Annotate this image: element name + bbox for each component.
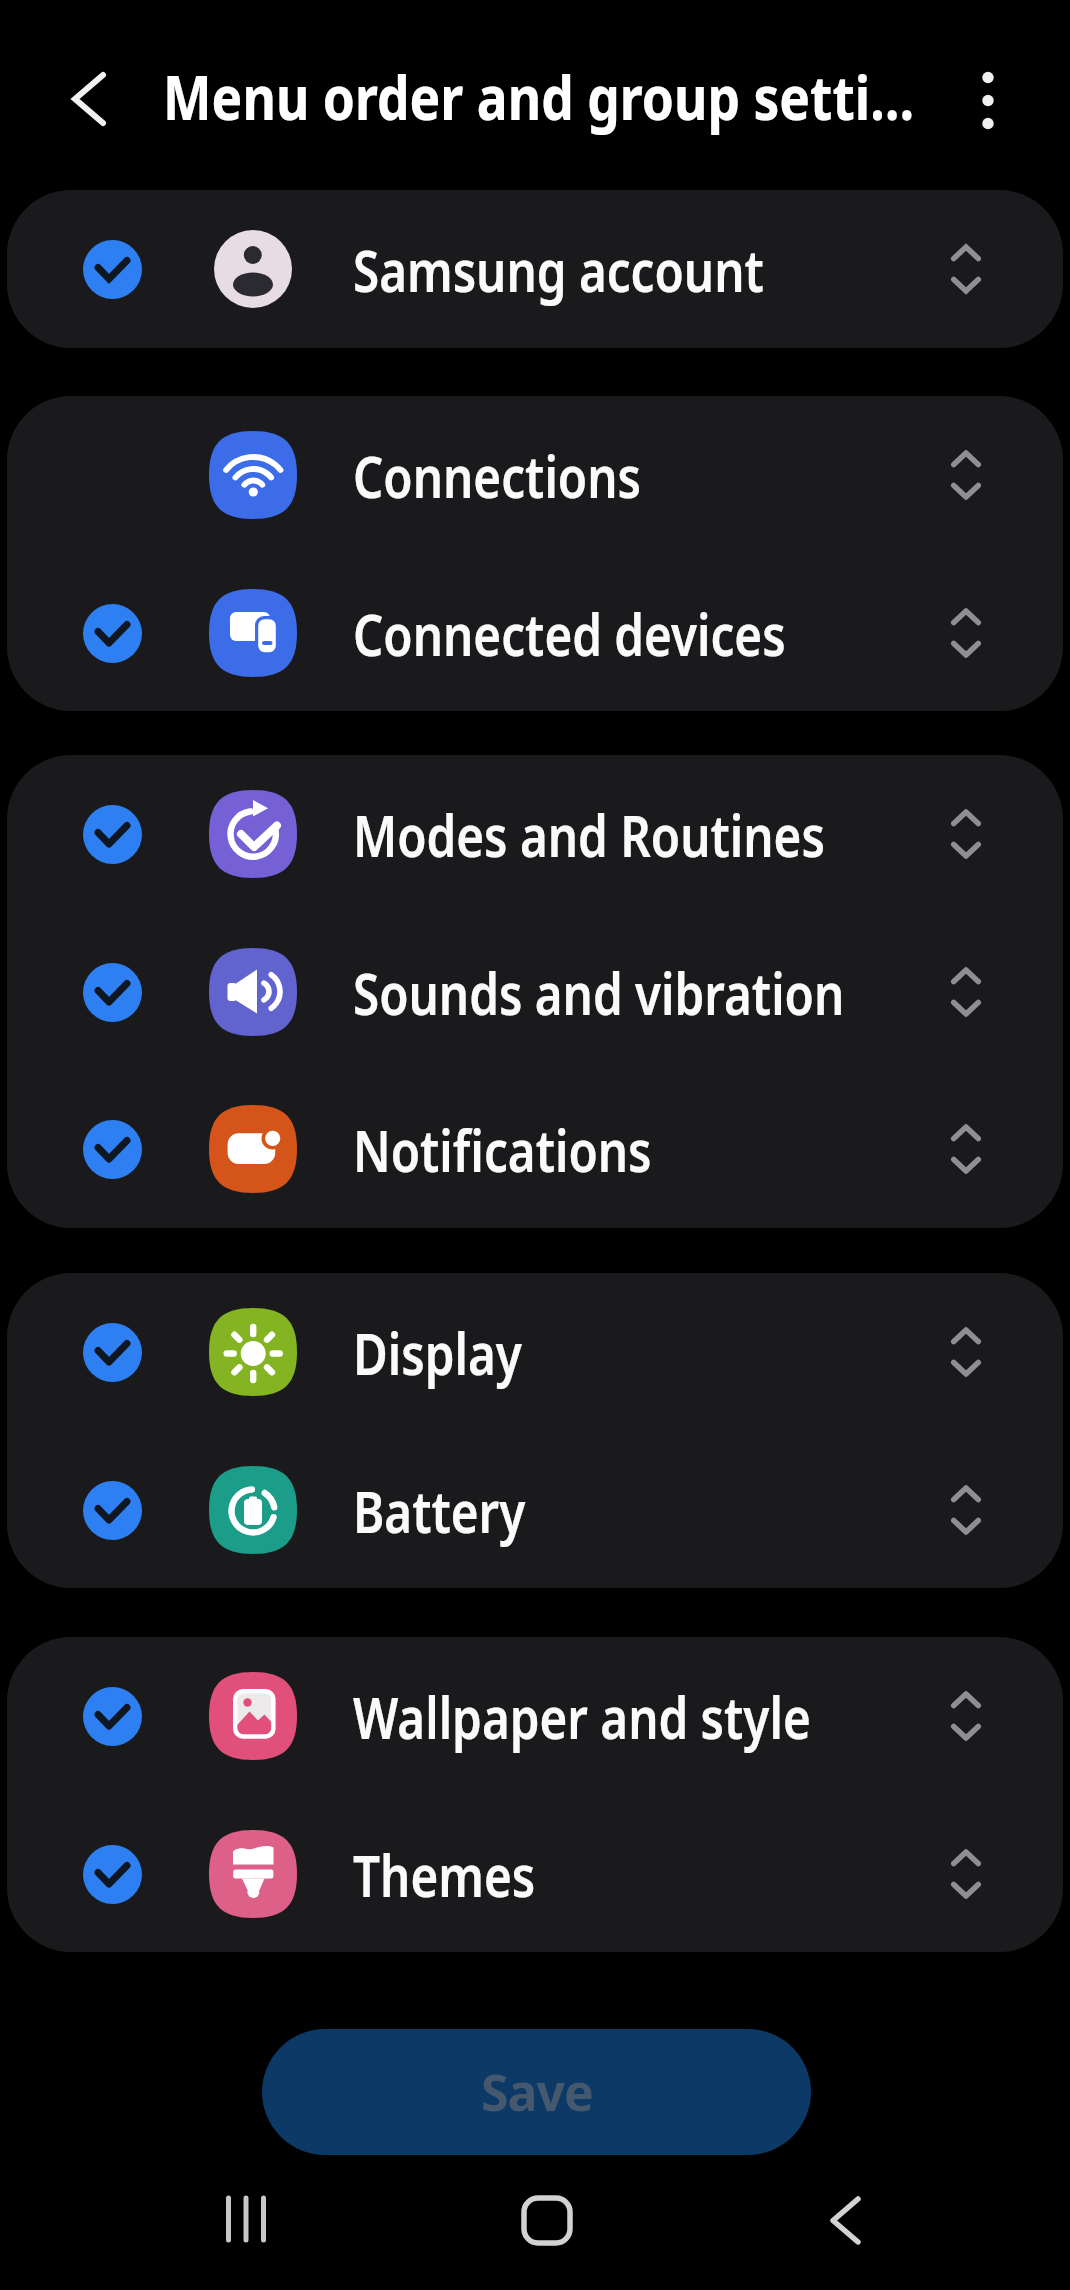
staticText: Connections bbox=[353, 436, 642, 515]
staticText: Display bbox=[353, 1313, 522, 1392]
staticText: Wallpaper and style bbox=[353, 1677, 811, 1756]
staticText: Battery bbox=[353, 1471, 526, 1550]
staticText: Connected devices bbox=[353, 594, 786, 673]
staticText: Menu order and group setti… bbox=[163, 55, 915, 138]
staticText: Sounds and vibration bbox=[353, 953, 845, 1032]
staticText: Save bbox=[481, 2058, 593, 2126]
staticText: Themes bbox=[353, 1835, 536, 1914]
staticText: Modes and Routines bbox=[353, 795, 825, 874]
staticText: Samsung account bbox=[353, 230, 765, 309]
staticText: Notifications bbox=[353, 1110, 652, 1189]
